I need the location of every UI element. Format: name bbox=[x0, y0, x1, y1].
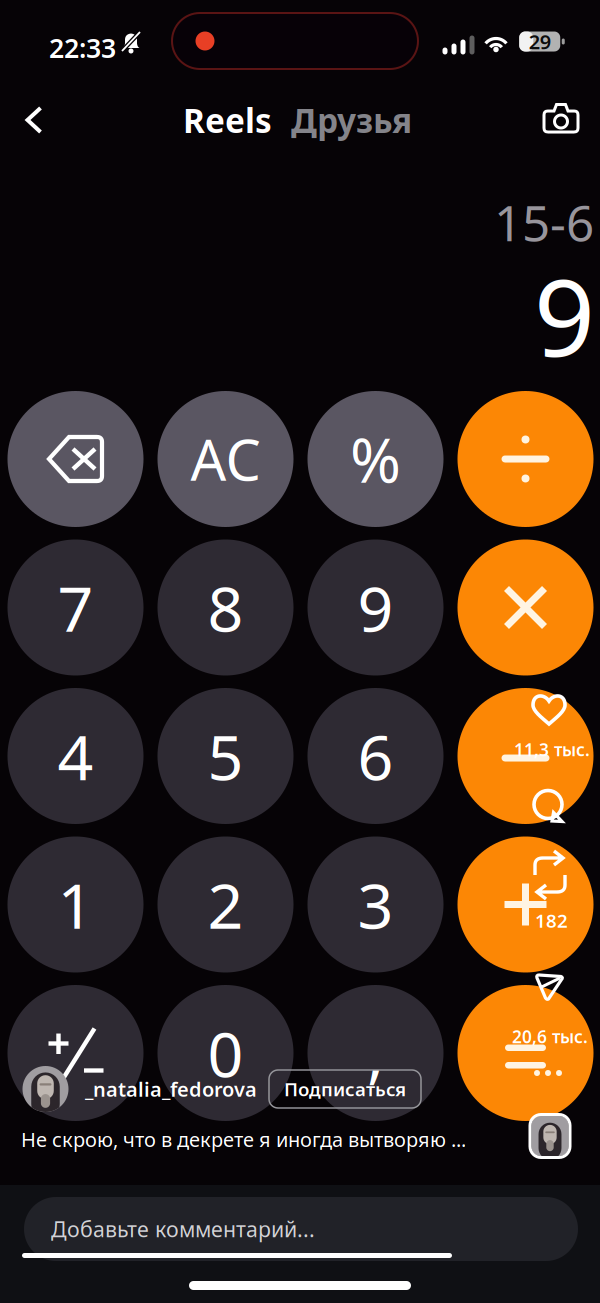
staticText: 9 bbox=[534, 244, 595, 386]
button[interactable]: AC bbox=[157, 391, 293, 527]
staticText: 182 bbox=[535, 908, 568, 933]
staticText: 5 bbox=[207, 714, 243, 798]
button[interactable]: Подписаться bbox=[269, 1070, 421, 1108]
staticText: Не скрою, что в декрете я иногда вытворя… bbox=[21, 1126, 466, 1153]
button[interactable]: Plus minus bbox=[7, 985, 143, 1121]
button[interactable]: Plus bbox=[457, 836, 593, 972]
staticText: 20,6 тыс. bbox=[512, 1025, 588, 1048]
button[interactable]: Profile bbox=[528, 1113, 571, 1159]
button[interactable]: % bbox=[307, 391, 443, 527]
staticText: Reels bbox=[183, 98, 272, 142]
staticText: 2 bbox=[207, 863, 243, 946]
button[interactable]: Друзья bbox=[291, 103, 417, 137]
staticText: Друзья bbox=[291, 98, 412, 142]
staticText: 22:33 bbox=[49, 30, 116, 65]
button[interactable]: Divide bbox=[457, 391, 593, 527]
button[interactable]: 4 bbox=[7, 688, 143, 824]
button[interactable]: Multiply bbox=[457, 539, 593, 675]
button[interactable]: 6 bbox=[307, 688, 443, 824]
staticText: AC bbox=[190, 422, 260, 496]
staticText: 15-6 bbox=[494, 189, 594, 255]
button[interactable]: Profile picture bbox=[22, 1066, 68, 1112]
staticText: 11,3 тыс. bbox=[514, 738, 590, 761]
staticText: 29 bbox=[529, 28, 551, 55]
button[interactable]: Minus bbox=[457, 688, 593, 824]
staticText: 1 bbox=[57, 863, 93, 946]
button[interactable]: Equals bbox=[457, 985, 593, 1121]
staticText: 7 bbox=[57, 566, 93, 649]
button[interactable]: 8 bbox=[157, 539, 293, 675]
staticText: 9 bbox=[357, 566, 393, 649]
button[interactable]: Delete bbox=[7, 391, 143, 527]
button[interactable]: 7 bbox=[7, 539, 143, 675]
staticText: Добавьте комментарий... bbox=[51, 1215, 315, 1243]
button[interactable]: 0 bbox=[157, 985, 293, 1121]
button[interactable]: 2 bbox=[157, 836, 293, 972]
button[interactable]: , bbox=[307, 985, 443, 1121]
button[interactable]: 9 bbox=[307, 539, 443, 675]
button[interactable]: More options bbox=[528, 1062, 568, 1084]
button[interactable]: Camera bbox=[543, 100, 579, 136]
staticText: 3 bbox=[357, 863, 393, 946]
button[interactable]: Comment bbox=[534, 790, 566, 823]
button[interactable]: Repost bbox=[532, 855, 568, 895]
button[interactable]: Back bbox=[7, 93, 61, 147]
button[interactable]: Like bbox=[531, 692, 567, 726]
staticText: 4 bbox=[57, 714, 93, 798]
staticText: 8 bbox=[207, 566, 243, 649]
staticText: 6 bbox=[357, 714, 393, 798]
button[interactable]: Share bbox=[533, 972, 565, 1002]
staticText: 0 bbox=[207, 1011, 243, 1095]
button[interactable]: 3 bbox=[307, 836, 443, 972]
button[interactable]: 1 bbox=[7, 836, 143, 972]
staticText: _natalia_fedorova bbox=[85, 1076, 257, 1102]
staticText: , bbox=[367, 1011, 384, 1095]
staticText: Подписаться bbox=[284, 1077, 406, 1101]
button[interactable]: 5 bbox=[157, 688, 293, 824]
staticText: % bbox=[350, 418, 401, 500]
button[interactable]: Reels bbox=[183, 103, 275, 137]
button[interactable]: Добавьте комментарий... bbox=[24, 1197, 578, 1261]
button[interactable]: _natalia_fedorova bbox=[85, 1074, 257, 1104]
